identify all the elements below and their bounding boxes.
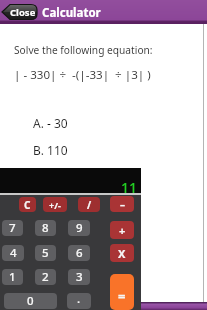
- button[interactable]: 8: [35, 220, 56, 236]
- staticText: X: [118, 246, 126, 261]
- button[interactable]: 1: [2, 269, 23, 285]
- staticText: 1: [9, 269, 16, 285]
- button[interactable]: .: [67, 293, 91, 309]
- button[interactable]: –: [110, 196, 134, 212]
- button[interactable]: C: [19, 197, 36, 212]
- button[interactable]: 5: [35, 245, 56, 261]
- staticText: 11: [121, 178, 138, 197]
- button[interactable]: 2: [35, 269, 56, 285]
- button[interactable]: 6: [68, 245, 90, 261]
- staticText: 7: [9, 220, 16, 236]
- staticText: .: [77, 293, 81, 307]
- staticText: Calculator: [42, 5, 101, 21]
- staticText: 9: [76, 220, 83, 236]
- staticText: | - 330| ÷ -(|-33| ÷ |3| ): [14, 67, 151, 83]
- button[interactable]: /: [78, 197, 100, 212]
- button[interactable]: +/-: [43, 197, 67, 212]
- staticText: Solve the following equation:: [14, 43, 153, 57]
- staticText: –: [120, 197, 125, 211]
- staticText: 8: [42, 220, 49, 236]
- button[interactable]: Close: [2, 4, 37, 20]
- button[interactable]: 3: [68, 269, 90, 285]
- staticText: 0: [27, 293, 34, 309]
- staticText: +: [119, 223, 126, 238]
- staticText: =: [118, 287, 126, 305]
- button[interactable]: 7: [2, 220, 23, 236]
- staticText: 2: [42, 269, 49, 285]
- staticText: 5: [42, 245, 49, 261]
- button[interactable]: 4: [2, 245, 24, 261]
- staticText: 3: [76, 269, 83, 285]
- button[interactable]: B. 110: [33, 142, 68, 158]
- button[interactable]: 9: [68, 220, 90, 236]
- staticText: Close: [10, 6, 36, 19]
- staticText: +/-: [49, 199, 61, 211]
- button[interactable]: A. - 30: [33, 115, 68, 131]
- button[interactable]: 0: [4, 293, 57, 309]
- staticText: /: [87, 198, 92, 212]
- staticText: 6: [76, 245, 83, 261]
- button[interactable]: +: [110, 221, 134, 239]
- staticText: 4: [10, 245, 17, 261]
- button[interactable]: =: [110, 274, 134, 310]
- staticText: C: [24, 198, 31, 212]
- button[interactable]: X: [110, 244, 134, 262]
